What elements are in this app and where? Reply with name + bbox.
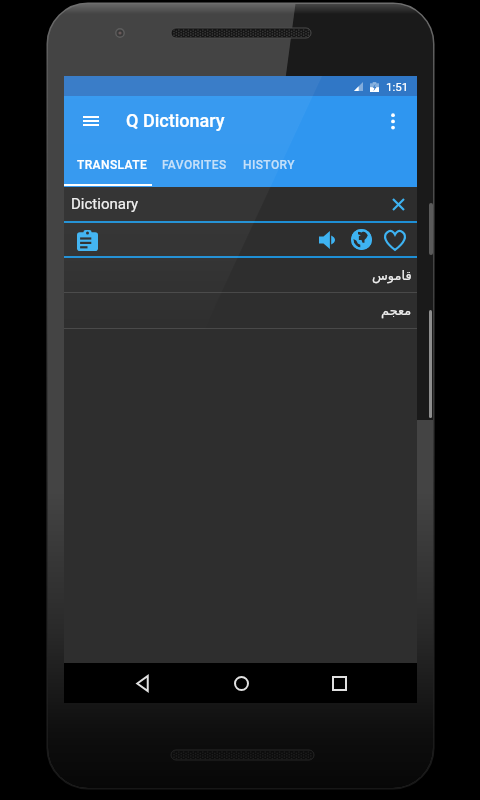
staticText: قاموس [372,268,412,283]
button[interactable]: قاموس [64,258,417,292]
button[interactable]: Home [221,663,261,703]
staticText: Q Dictionary [126,110,225,131]
staticText: FAVORITES [162,158,227,172]
button[interactable]: Menu [71,101,111,141]
button[interactable]: Translate online [344,223,378,256]
button[interactable]: Speak [310,223,344,256]
button[interactable]: TRANSLATE [64,146,152,186]
button[interactable]: Back [122,663,162,703]
staticText: HISTORY [243,158,295,172]
button[interactable]: معجم [64,293,417,328]
staticText: Dictionary [71,195,139,213]
button[interactable]: Paste [72,225,102,255]
button[interactable]: Recents [319,663,359,703]
button[interactable]: More options [373,101,413,141]
button[interactable]: Favorite [378,223,412,256]
button[interactable]: FAVORITES [152,146,230,186]
button[interactable]: Clear [384,190,412,218]
staticText: 1:51 [386,80,409,93]
staticText: TRANSLATE [77,158,148,172]
button[interactable]: HISTORY [230,146,312,186]
staticText: معجم [381,303,412,318]
